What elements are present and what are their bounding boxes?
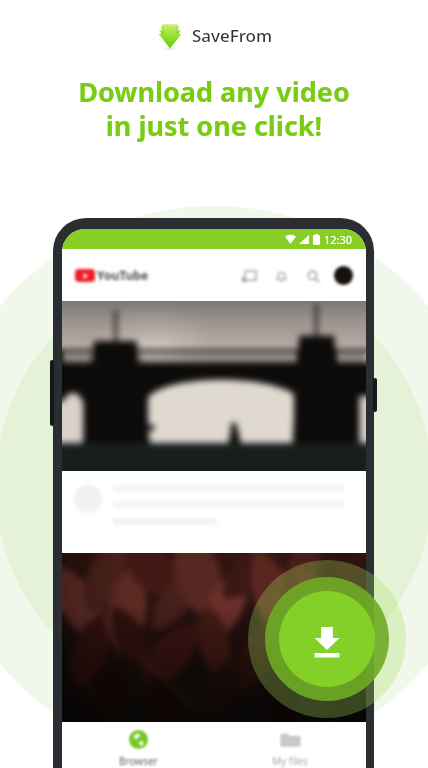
button[interactable]: Account [334,266,353,285]
button[interactable]: Download [242,554,412,724]
button[interactable]: My files [215,730,365,768]
staticText: Browser [119,754,158,768]
staticText: YouTube [97,267,149,283]
button[interactable]: Browser [63,730,213,768]
staticText: My files [272,754,308,768]
button[interactable]: Notifications [272,267,290,285]
button[interactable]: Search [304,267,322,285]
staticText: 12:30 [324,232,353,247]
staticText: Download any video in just one click! [78,73,350,144]
button[interactable]: Cast [240,267,258,285]
staticText: SaveFrom [192,24,273,47]
